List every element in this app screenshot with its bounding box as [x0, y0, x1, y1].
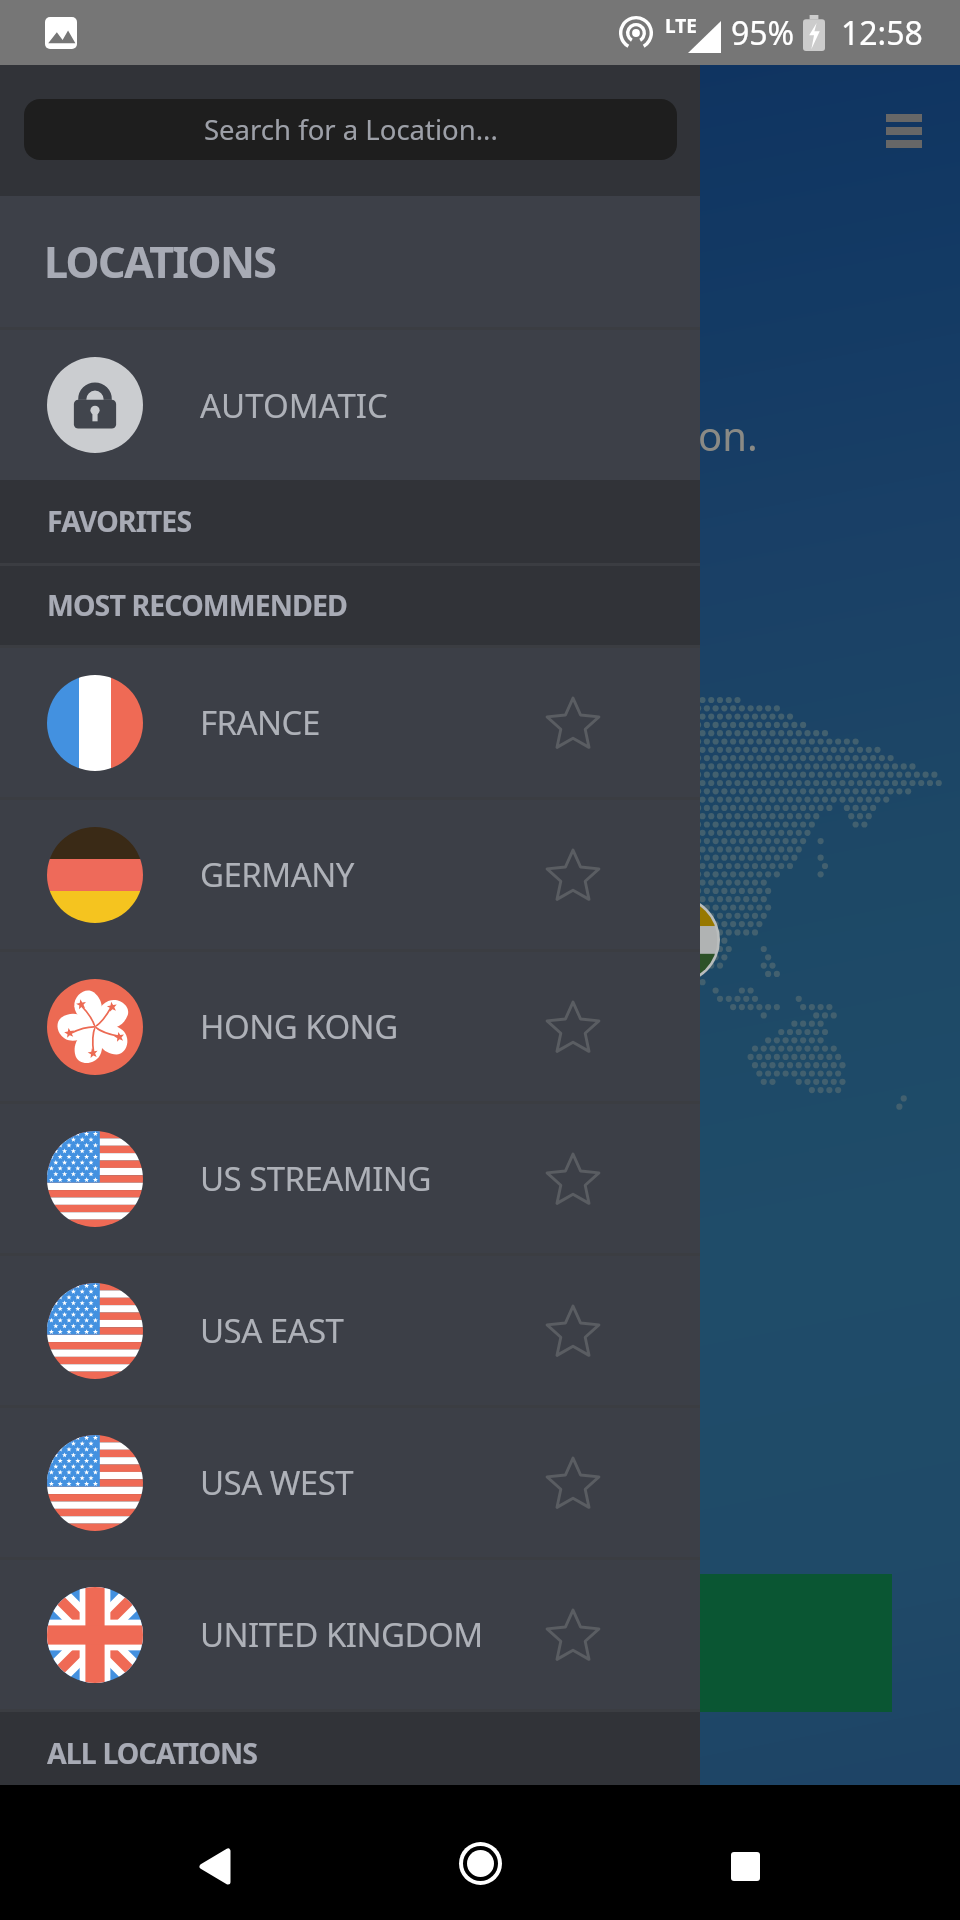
staticText: GERMANY	[200, 852, 354, 897]
button[interactable]: Add HONG KONG to favorites	[518, 972, 628, 1082]
button[interactable]: Add USA WEST to favorites	[518, 1428, 628, 1538]
staticText: FRANCE	[200, 700, 320, 745]
staticText: USA WEST	[200, 1460, 354, 1505]
button[interactable]: CONNECT	[206, 1574, 892, 1712]
button[interactable]: FRANCE	[0, 648, 700, 797]
button[interactable]: Add UNITED KINGDOM to favorites	[518, 1580, 628, 1690]
staticText: FAVORITES	[47, 502, 192, 541]
button[interactable]: Recent apps	[685, 1809, 805, 1920]
button[interactable]: Add GERMANY to favorites	[518, 820, 628, 930]
button[interactable]: Add US STREAMING to favorites	[518, 1124, 628, 1234]
staticText: Search for a Location...	[204, 111, 498, 148]
button[interactable]: GERMANY	[0, 800, 700, 949]
staticText: US STREAMING	[200, 1156, 431, 1201]
button[interactable]: Add USA EAST to favorites	[518, 1276, 628, 1386]
staticText: HONG KONG	[200, 1004, 398, 1049]
staticText: 12:58	[841, 11, 923, 55]
staticText: AUTOMATIC	[200, 383, 388, 428]
button[interactable]: AUTOMATIC	[0, 330, 700, 480]
button[interactable]: UNITED KINGDOM	[0, 1560, 700, 1709]
staticText: LOCATIONS	[44, 232, 276, 291]
staticText: UNITED KINGDOM	[200, 1612, 483, 1657]
button[interactable]: Search for a Location...	[24, 99, 677, 160]
button[interactable]: HONG KONG	[0, 952, 700, 1101]
button[interactable]: Add FRANCE to favorites	[518, 668, 628, 778]
button[interactable]: Home	[420, 1806, 540, 1920]
staticText: USA EAST	[200, 1308, 344, 1353]
staticText: Select your preferred location.	[34, 408, 914, 462]
button[interactable]: USA WEST	[0, 1408, 700, 1557]
button[interactable]: US STREAMING	[0, 1104, 700, 1253]
button[interactable]: Open navigation drawer	[868, 95, 940, 167]
staticText: LTE	[665, 13, 697, 39]
staticText: 95%	[731, 11, 795, 55]
button[interactable]: USA EAST	[0, 1256, 700, 1405]
staticText: CONNECT	[469, 1620, 629, 1666]
staticText: ALL LOCATIONS	[47, 1734, 258, 1773]
staticText: MOST RECOMMENDED	[47, 586, 348, 625]
button[interactable]: Back	[155, 1809, 275, 1920]
